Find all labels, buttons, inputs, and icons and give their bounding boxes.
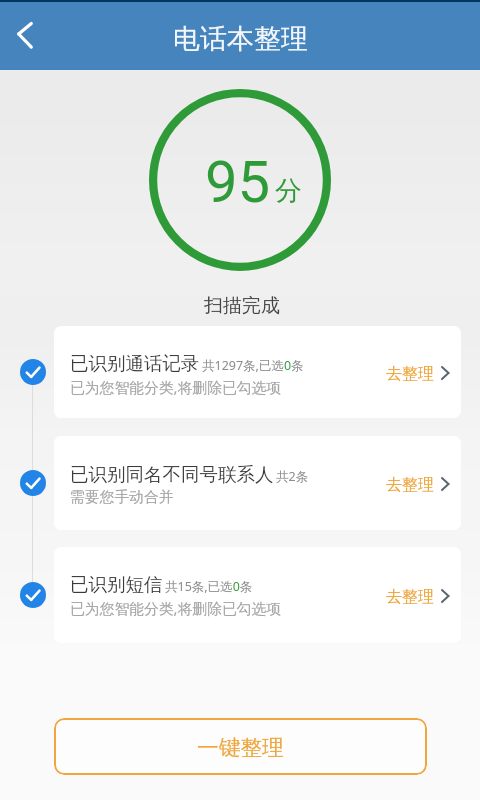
staticText: 已识别短信 [70,573,163,596]
staticText: 分 [275,174,302,208]
button[interactable]: Back [0,6,52,66]
button[interactable]: 一键整理 [54,718,427,775]
button[interactable] [54,547,461,643]
button[interactable] [54,326,461,418]
staticText: 需要您手动合并 [70,488,174,507]
staticText: 已为您智能分类,将删除已勾选项 [70,377,282,397]
staticText: 共2条 [276,468,309,485]
staticText: 去整理 [386,364,434,384]
staticText: 去整理 [386,475,434,495]
staticText: 共1297条,已选0条 [202,357,304,374]
staticText: 电话本整理 [173,22,308,56]
button[interactable]: Done [20,470,46,496]
button[interactable] [54,436,461,530]
button[interactable]: Done [20,359,46,385]
staticText: 已识别同名不同号联系人 [70,463,274,486]
staticText: 扫描完成 [204,294,280,318]
staticText: 95 [205,148,271,216]
button[interactable]: 去整理 [386,361,458,387]
button[interactable]: Done [20,582,46,608]
staticText: 一键整理 [197,734,284,761]
button[interactable]: 去整理 [386,584,458,610]
staticText: 去整理 [386,587,434,607]
staticText: 共15条,已选0条 [165,578,253,595]
staticText: 已识别通话记录 [70,352,200,375]
button[interactable]: 去整理 [386,472,458,498]
staticText: 已为您智能分类,将删除已勾选项 [70,598,282,618]
